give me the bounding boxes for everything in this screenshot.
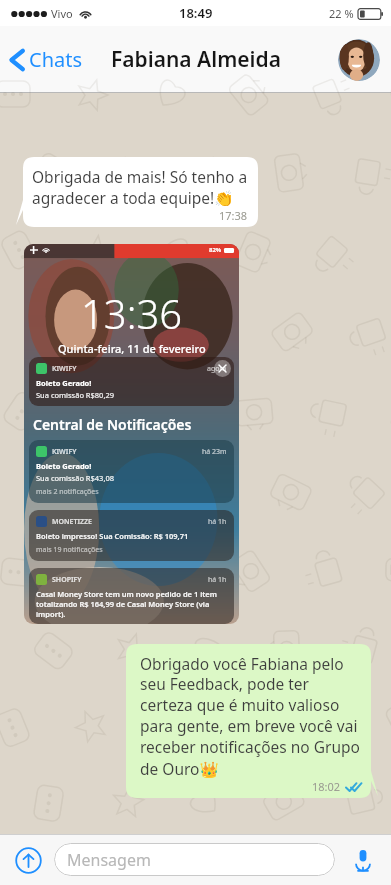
button[interactable]: Contact profile photo: [338, 39, 380, 81]
staticText: há 1h: [208, 517, 227, 527]
staticText: há 1h: [208, 575, 227, 585]
button[interactable]: Obrigada de mais! Só tenho a agradecer a…: [16, 157, 258, 227]
button[interactable]: SHOPIFY: [29, 568, 234, 624]
staticText: 13:36: [81, 286, 183, 340]
staticText: SHOPIFY: [52, 575, 82, 585]
staticText: Mensagem: [67, 849, 151, 871]
staticText: 82%: [209, 246, 222, 254]
staticText: Sua comissão R$80,29: [36, 390, 114, 400]
staticText: MONETIZZE: [52, 517, 93, 527]
staticText: mais 19 notificações: [36, 545, 103, 555]
button[interactable]: Attach: [12, 844, 44, 876]
button[interactable]: KIWIFY: [29, 440, 234, 503]
staticText: 18:02: [312, 779, 341, 794]
button[interactable]: Chats: [6, 42, 87, 77]
staticText: Obrigado você Fabiana pelo seu Feedback,…: [140, 653, 360, 779]
staticText: Chats: [29, 46, 83, 73]
button[interactable]: Record voice message: [347, 844, 379, 876]
button[interactable]: Obrigado você Fabiana pelo seu Feedback,…: [126, 644, 378, 798]
staticText: Vivo: [51, 6, 73, 21]
staticText: 18:49: [179, 4, 213, 22]
staticText: mais 2 notificações: [36, 487, 99, 497]
staticText: Sua comissão R$43,08: [36, 473, 114, 483]
staticText: 17:38: [219, 208, 248, 223]
staticText: Obrigada de mais! Só tenho a agradecer a…: [32, 166, 248, 208]
button[interactable]: Close notification center: [214, 360, 231, 377]
button[interactable]: KIWIFY: [29, 357, 234, 406]
button[interactable]: MONETIZZE: [29, 510, 234, 561]
staticText: Boleto Gerado!: [36, 378, 92, 388]
staticText: 22 %: [329, 6, 354, 21]
staticText: Casal Money Store tem um novo pedido de …: [36, 589, 227, 618]
staticText: Fabiana Almeida: [111, 45, 281, 74]
staticText: agora: [207, 364, 227, 374]
staticText: Boleto Gerado!: [36, 461, 92, 471]
staticText: KIWIFY: [52, 364, 77, 374]
button[interactable]: Mensagem: [54, 843, 335, 876]
staticText: há 23m: [202, 447, 227, 457]
staticText: Quinta-feira, 11 de fevereiro: [58, 341, 206, 356]
button[interactable]: 82%: [24, 244, 239, 624]
staticText: KIWIFY: [52, 447, 77, 457]
staticText: Boleto impresso! Sua Comissão: R$ 109,71: [36, 531, 189, 541]
staticText: Central de Notificações: [33, 415, 192, 434]
